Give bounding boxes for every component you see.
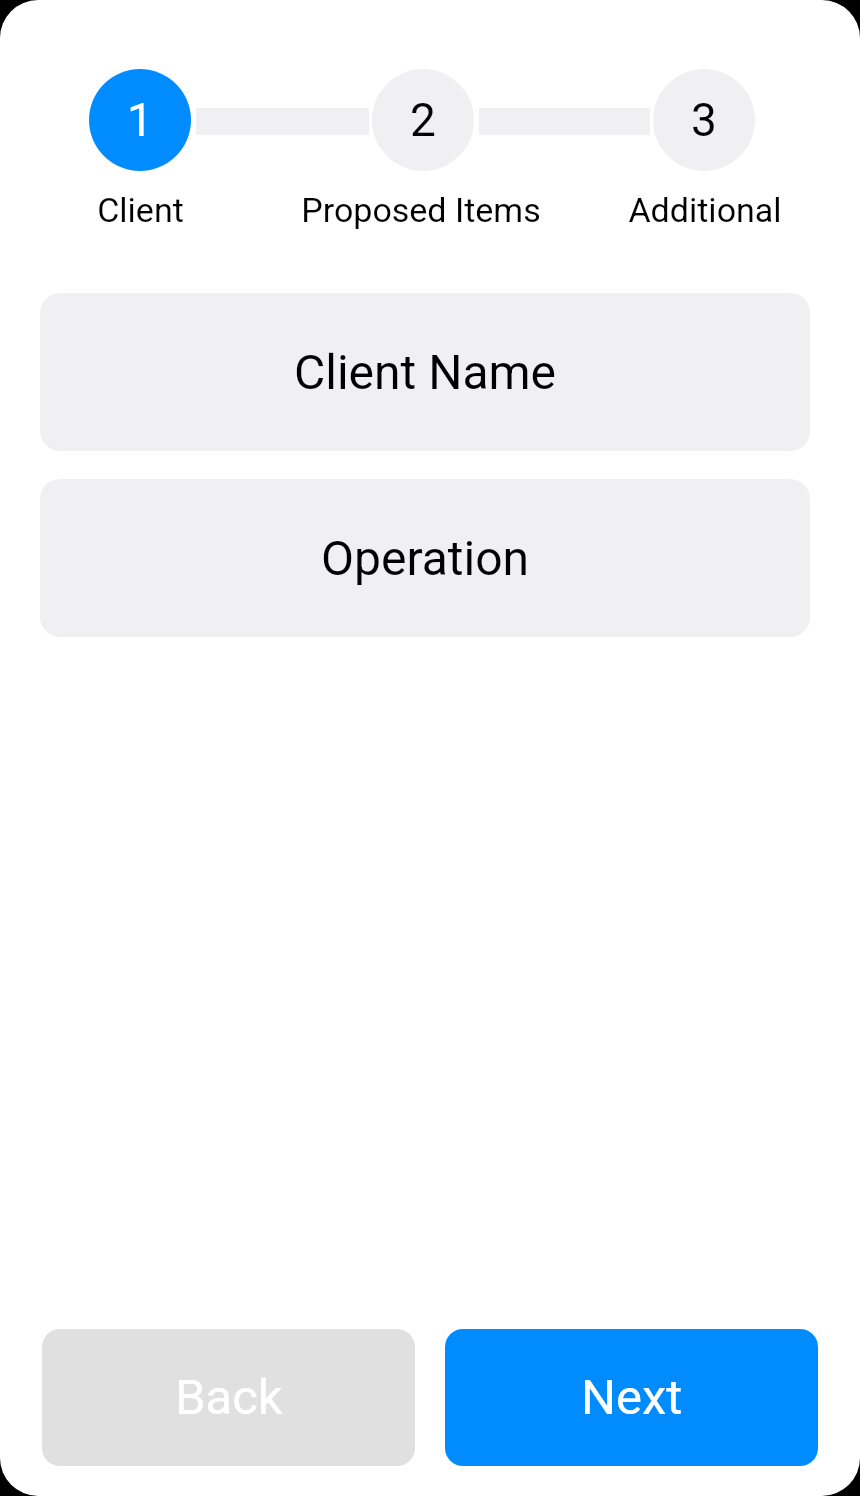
staticText: 3 <box>691 93 717 147</box>
staticText: Additional <box>628 190 782 230</box>
button[interactable]: Step 1, Client <box>89 69 191 171</box>
staticText: Back <box>175 1369 283 1426</box>
staticText: Next <box>581 1369 683 1426</box>
staticText: Proposed Items <box>301 190 541 230</box>
button[interactable]: Client Name <box>40 293 810 451</box>
button[interactable]: Back <box>42 1329 415 1466</box>
button[interactable]: Step 2, Proposed Items <box>372 69 474 171</box>
staticText: Operation <box>321 530 530 586</box>
staticText: Client <box>97 190 184 230</box>
staticText: 2 <box>410 93 436 147</box>
button[interactable]: Step 3, Additional <box>653 69 755 171</box>
button[interactable]: Next <box>445 1329 818 1466</box>
button[interactable]: Operation <box>40 479 810 637</box>
staticText: Client Name <box>294 344 557 400</box>
staticText: 1 <box>127 93 153 147</box>
